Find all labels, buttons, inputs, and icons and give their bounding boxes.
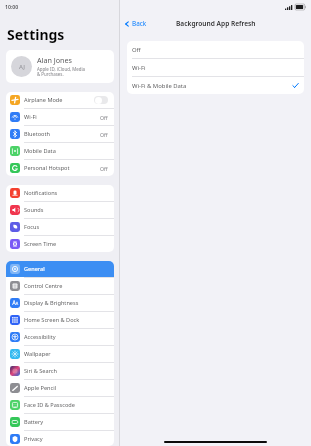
button[interactable]: Personal Hotspot xyxy=(6,160,114,176)
staticText: Off xyxy=(132,46,299,54)
button[interactable]: Wi-Fi xyxy=(6,109,114,125)
staticText: Wi-Fi xyxy=(132,64,299,72)
staticText: Siri & Search xyxy=(24,367,110,375)
button[interactable]: Home Screen & Dock xyxy=(6,312,114,328)
staticText: Mobile Data xyxy=(24,147,110,155)
button[interactable]: Display & Brightness xyxy=(6,295,114,311)
button[interactable]: Airplane Mode xyxy=(6,92,114,108)
button[interactable]: Sounds xyxy=(6,202,114,218)
staticText: Apple Pencil xyxy=(24,384,110,392)
staticText: Off xyxy=(100,114,108,121)
button[interactable]: Battery xyxy=(6,414,114,430)
button[interactable]: Screen Time xyxy=(6,236,114,252)
staticText: Notifications xyxy=(24,189,110,197)
button[interactable]: Control Centre xyxy=(6,278,114,294)
staticText: Background App Refresh xyxy=(176,19,256,28)
button[interactable]: AJ xyxy=(6,50,114,83)
button[interactable]: Wallpaper xyxy=(6,346,114,362)
staticText: General xyxy=(24,265,110,273)
button[interactable]: Siri & Search xyxy=(6,363,114,379)
staticText: Privacy xyxy=(24,435,110,443)
staticText: Face ID & Passcode xyxy=(24,401,110,409)
staticText: Alan Jones xyxy=(37,55,73,65)
button[interactable]: Back xyxy=(120,17,151,30)
staticText: Off xyxy=(100,165,108,172)
button[interactable]: Off xyxy=(127,41,304,58)
staticText: Control Centre xyxy=(24,282,110,290)
staticText: Focus xyxy=(24,223,110,231)
staticText: Back xyxy=(132,19,147,28)
staticText: Apple ID, iCloud, Media & Purchases. xyxy=(37,66,85,78)
staticText: Accessibility xyxy=(24,333,110,341)
staticText: Off xyxy=(100,131,108,138)
button[interactable]: Wi-Fi xyxy=(127,59,304,76)
staticText: Home Screen & Dock xyxy=(24,316,110,324)
button[interactable]: Apple Pencil xyxy=(6,380,114,396)
button[interactable]: Privacy xyxy=(6,431,114,446)
staticText: Sounds xyxy=(24,206,110,214)
staticText: Settings xyxy=(7,25,65,44)
button[interactable]: General xyxy=(6,261,114,277)
staticText: Personal Hotspot xyxy=(24,164,100,172)
staticText: Wi-Fi & Mobile Data xyxy=(132,82,292,90)
button[interactable]: Face ID & Passcode xyxy=(6,397,114,413)
staticText: Display & Brightness xyxy=(24,299,110,307)
button[interactable]: Wi-Fi & Mobile Data xyxy=(127,77,304,94)
staticText: Wallpaper xyxy=(24,350,110,358)
staticText: Bluetooth xyxy=(24,130,100,138)
button[interactable]: Accessibility xyxy=(6,329,114,345)
staticText: Battery xyxy=(24,418,110,426)
staticText: Wi-Fi xyxy=(24,113,100,121)
staticText: AJ xyxy=(19,63,25,71)
staticText: Screen Time xyxy=(24,240,110,248)
button[interactable]: Mobile Data xyxy=(6,143,114,159)
button[interactable]: Focus xyxy=(6,219,114,235)
button[interactable]: Airplane Mode toggle xyxy=(94,96,108,104)
button[interactable]: Bluetooth xyxy=(6,126,114,142)
button[interactable]: Notifications xyxy=(6,185,114,201)
staticText: 10:00 xyxy=(5,3,19,10)
staticText: Airplane Mode xyxy=(24,96,94,104)
